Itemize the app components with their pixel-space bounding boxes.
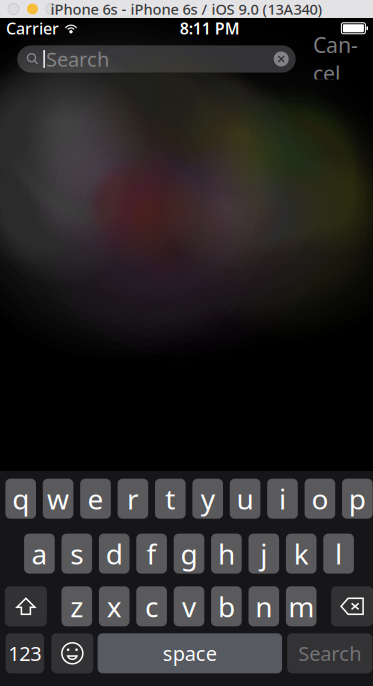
button[interactable]: Emoji: [51, 633, 93, 673]
button[interactable]: v: [174, 586, 204, 626]
staticText: t: [165, 480, 175, 517]
staticText: Cancel: [313, 31, 358, 87]
staticText: m: [288, 588, 314, 625]
staticText: c: [145, 588, 158, 625]
button[interactable]: k: [286, 534, 316, 574]
button[interactable]: Cancel: [309, 45, 362, 73]
staticText: l: [335, 535, 342, 572]
staticText: o: [311, 480, 328, 517]
staticText: i: [279, 480, 286, 517]
button[interactable]: s: [61, 534, 92, 574]
button[interactable]: h: [211, 534, 242, 574]
staticText: k: [294, 535, 309, 572]
button[interactable]: Delete: [331, 586, 373, 626]
button[interactable]: c: [136, 586, 167, 626]
button[interactable]: Search: [287, 633, 372, 673]
button[interactable]: x: [99, 586, 129, 626]
staticText: b: [218, 588, 235, 625]
button[interactable]: e: [80, 479, 111, 519]
staticText: u: [237, 480, 254, 517]
button[interactable]: w: [43, 479, 73, 519]
button[interactable]: m: [286, 586, 316, 626]
button[interactable]: Search: [17, 45, 296, 73]
staticText: x: [107, 588, 122, 625]
staticText: z: [70, 588, 83, 625]
button[interactable]: u: [230, 479, 260, 519]
staticText: Carrier: [6, 18, 59, 39]
staticText: d: [106, 535, 123, 572]
staticText: p: [349, 480, 366, 517]
staticText: e: [87, 480, 103, 517]
staticText: Search: [46, 46, 109, 72]
button[interactable]: a: [24, 534, 55, 574]
staticText: y: [201, 480, 215, 517]
staticText: n: [255, 588, 272, 625]
button[interactable]: r: [118, 479, 148, 519]
button[interactable]: n: [248, 586, 279, 626]
staticText: g: [180, 535, 197, 572]
button[interactable]: i: [267, 479, 298, 519]
button[interactable]: q: [5, 479, 36, 519]
staticText: s: [70, 535, 83, 572]
staticText: a: [31, 535, 47, 572]
button[interactable]: g: [174, 534, 204, 574]
button[interactable]: Shift: [5, 586, 47, 626]
button[interactable]: y: [192, 479, 223, 519]
button[interactable]: space: [98, 633, 282, 673]
button[interactable]: z: [61, 586, 92, 626]
staticText: q: [12, 480, 29, 517]
button[interactable]: p: [342, 479, 373, 519]
button[interactable]: f: [136, 534, 167, 574]
button[interactable]: j: [248, 534, 279, 574]
staticText: iPhone 6s - iPhone 6s / iOS 9.0 (13A340): [50, 0, 322, 19]
button[interactable]: l: [323, 534, 354, 574]
staticText: v: [182, 588, 196, 625]
staticText: 123: [8, 640, 41, 667]
staticText: h: [218, 535, 235, 572]
button[interactable]: t: [155, 479, 186, 519]
staticText: Search: [298, 640, 361, 667]
staticText: f: [147, 535, 157, 572]
staticText: 8:11 PM: [180, 18, 240, 39]
staticText: space: [163, 640, 217, 667]
button[interactable]: b: [211, 586, 242, 626]
staticText: r: [127, 480, 139, 517]
button[interactable]: d: [99, 534, 129, 574]
button[interactable]: o: [305, 479, 335, 519]
staticText: j: [260, 535, 267, 572]
button[interactable]: 123: [6, 633, 44, 673]
staticText: w: [47, 480, 69, 517]
